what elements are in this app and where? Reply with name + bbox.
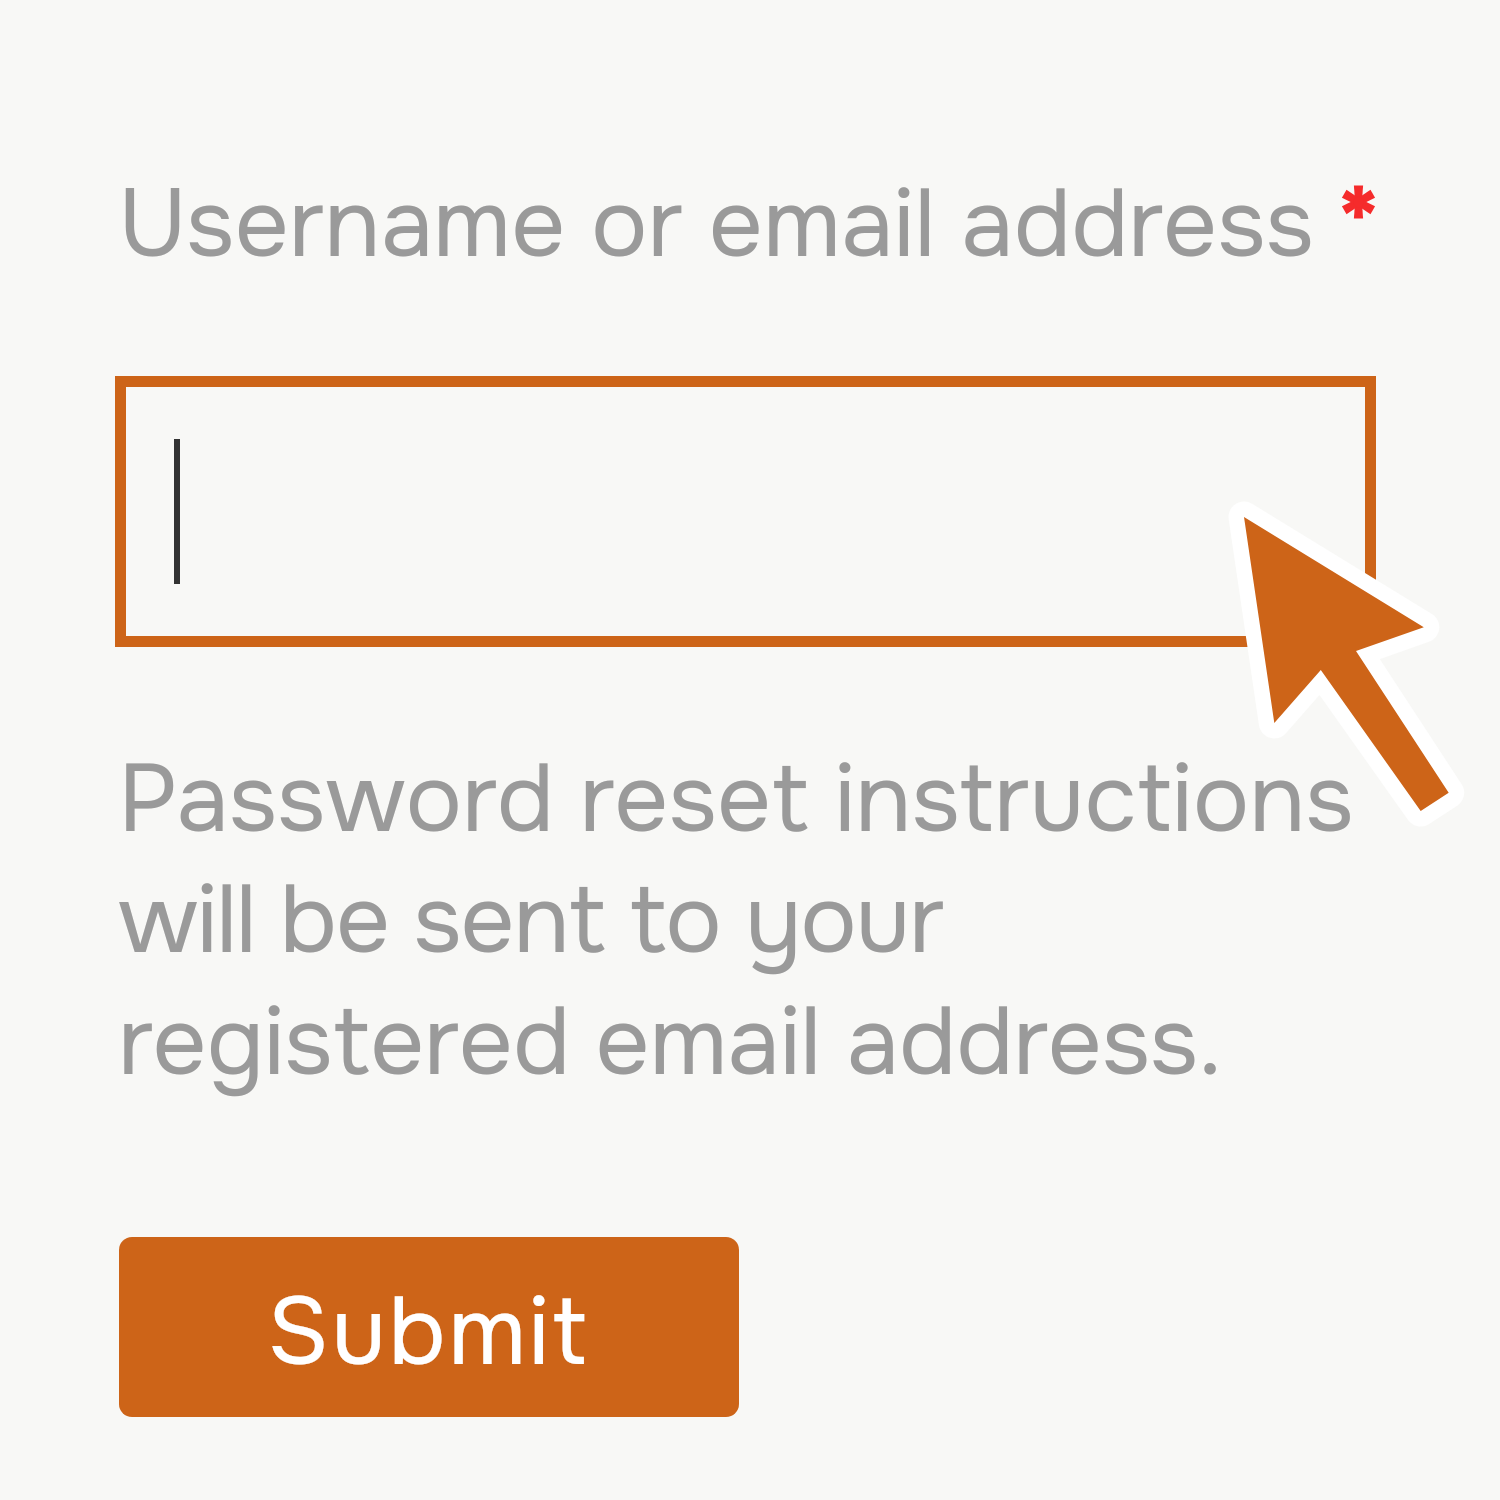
staticText: registered email address. — [118, 982, 1222, 1103]
staticText: Submit — [267, 1272, 590, 1393]
other: Mouse pointer — [0, 0, 1500, 1500]
button[interactable]: Submit — [119, 1237, 739, 1417]
staticText: Password reset instructions — [118, 739, 1354, 860]
button[interactable]: Username or email address input field — [115, 376, 1376, 647]
staticText: Username or email address — [118, 164, 1314, 285]
staticText: will be sent to your — [118, 860, 944, 981]
